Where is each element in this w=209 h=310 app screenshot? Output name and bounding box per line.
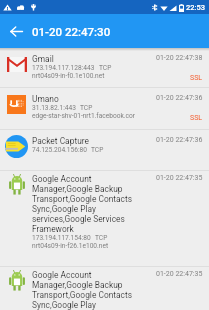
staticText: 01-20 22:47:38 <box>156 54 203 62</box>
staticText: Google Account Manager,Google Backup Tra… <box>32 174 135 234</box>
button[interactable]: Google Account Manager,Google Backup Tra… <box>0 171 209 267</box>
staticText: 22:53 <box>186 3 206 12</box>
staticText: TCP <box>95 234 108 242</box>
staticText: 173.194.117.128:443 <box>32 64 95 72</box>
staticText: 01-20 22:47:30 <box>32 25 111 38</box>
staticText: 01-20 22:47:36 <box>156 136 203 144</box>
staticText: 01-20 22:47:36 <box>156 94 203 102</box>
staticText: 01-20 22:47:35 <box>156 174 203 182</box>
staticText: TCP <box>80 104 93 112</box>
staticText: 173.194.117.154:80 <box>32 234 91 242</box>
staticText: Umano <box>32 94 59 104</box>
staticText: 74.125.204.156:80 <box>32 146 87 154</box>
staticText: Packet Capture <box>32 136 89 146</box>
staticText: Gmail <box>32 54 54 64</box>
button[interactable]: Packet Capture <box>0 130 209 171</box>
staticText: edge-star-shv-01-nrt1.facebook.com <box>32 112 135 120</box>
staticText: 01-20 22:47:35 <box>156 270 203 278</box>
button[interactable]: Back <box>0 15 32 47</box>
staticText: nrt04s09-in-f0.1e100.net <box>32 72 105 80</box>
staticText: 31.13.82.1:443 <box>32 104 76 112</box>
button[interactable]: Umano <box>0 88 209 130</box>
staticText: TCP <box>99 64 112 72</box>
staticText: SSL <box>190 114 203 122</box>
button[interactable]: Gmail <box>0 48 209 88</box>
staticText: TCP <box>91 146 104 154</box>
staticText: Google Account Manager,Google Backup Tra… <box>32 270 135 310</box>
staticText: nrt04s09-in-f26.1e100.net <box>32 242 109 250</box>
button[interactable]: Google Account Manager,Google Backup Tra… <box>0 267 209 310</box>
staticText: SSL <box>190 74 203 82</box>
